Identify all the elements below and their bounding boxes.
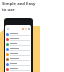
button[interactable] bbox=[5, 62, 31, 67]
button[interactable] bbox=[5, 42, 31, 47]
staticText: Simple and Easy bbox=[2, 1, 36, 7]
staticText: to use bbox=[2, 7, 15, 13]
button[interactable] bbox=[5, 37, 31, 42]
button[interactable] bbox=[5, 57, 31, 62]
button[interactable] bbox=[5, 32, 31, 37]
button[interactable] bbox=[5, 52, 31, 57]
button[interactable]: Toolbar bbox=[5, 25, 31, 32]
button[interactable] bbox=[5, 47, 31, 52]
button[interactable] bbox=[5, 67, 31, 72]
